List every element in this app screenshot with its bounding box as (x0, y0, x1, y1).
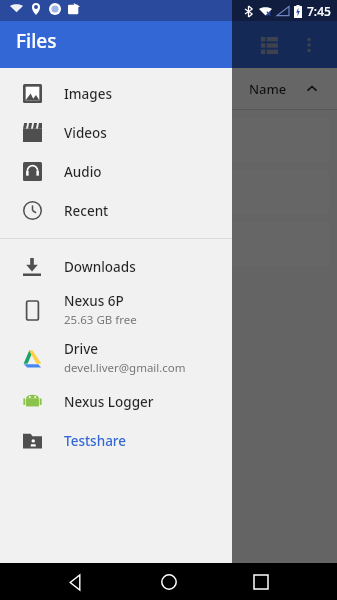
staticText: Audio (64, 163, 102, 181)
button[interactable]: Toggle view (249, 25, 289, 65)
staticText: Recent (64, 202, 109, 220)
button[interactable]: Audio (0, 152, 232, 191)
button[interactable]: Testshare (0, 421, 232, 460)
button[interactable]: Nexus 6P (0, 286, 232, 334)
staticText: screenshot.bmp (22, 235, 129, 254)
staticText: Images (64, 85, 112, 103)
button[interactable]: Downloads (0, 247, 232, 286)
staticText: Name (249, 80, 287, 98)
staticText: Drive (64, 340, 99, 358)
button[interactable]: Home (152, 565, 186, 599)
button[interactable]: Drive (0, 334, 232, 382)
staticText: VID_20170101_000 (22, 183, 146, 202)
staticText: Downloads (64, 258, 136, 276)
staticText: Videos (64, 124, 107, 142)
button[interactable]: Nexus Logger (0, 382, 232, 421)
button[interactable]: Name (249, 80, 319, 98)
staticText: devel.liver@gmail.com (64, 360, 186, 376)
staticText: Nexus 6P (64, 292, 124, 310)
button[interactable]: Images (0, 74, 232, 113)
staticText: Files (16, 28, 57, 54)
button[interactable]: Recent apps (244, 565, 278, 599)
staticText: 7:45 (307, 3, 331, 19)
button[interactable]: More options (289, 25, 329, 65)
staticText: Nexus Logger (64, 393, 154, 411)
button[interactable]: Recent (0, 191, 232, 230)
button[interactable]: IMG_20170101_100 (8, 118, 329, 162)
button[interactable]: Videos (0, 113, 232, 152)
button[interactable]: VID_20170101_000 (8, 170, 329, 214)
staticText: Testshare (64, 432, 127, 450)
staticText: 25.63 GB free (64, 312, 137, 328)
button[interactable]: screenshot.bmp (8, 222, 329, 266)
button[interactable]: Back (59, 565, 93, 599)
staticText: IMG_20170101_100 (22, 131, 151, 150)
